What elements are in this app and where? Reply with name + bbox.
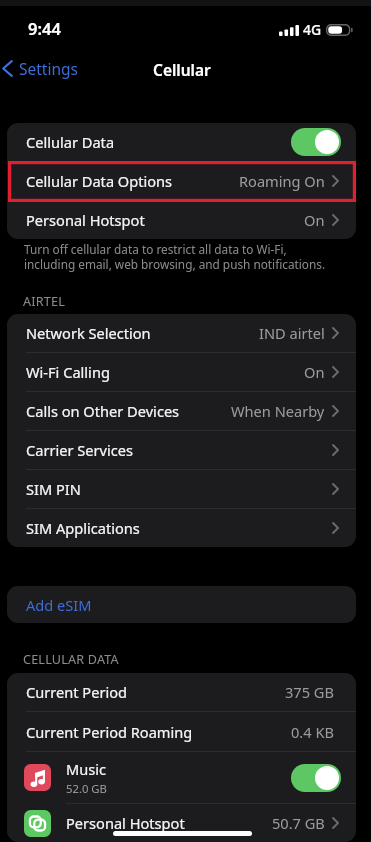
staticText: Personal Hotspot bbox=[26, 210, 145, 230]
button[interactable]: Current Period bbox=[7, 673, 356, 711]
button[interactable]: Add eSIM bbox=[7, 586, 356, 623]
staticText: 4G bbox=[303, 20, 322, 39]
button[interactable]: Cellular Data Options bbox=[7, 162, 356, 200]
staticText: When Nearby bbox=[231, 401, 325, 421]
staticText: Settings bbox=[19, 58, 78, 79]
staticText: Wi-Fi Calling bbox=[26, 362, 110, 382]
staticText: 50.7 GB bbox=[272, 813, 325, 833]
staticText: Roaming On bbox=[239, 171, 325, 191]
staticText: On bbox=[304, 210, 325, 230]
staticText: SIM Applications bbox=[26, 518, 140, 538]
button[interactable]: SIM PIN bbox=[7, 470, 356, 508]
staticText: 0.4 KB bbox=[291, 722, 334, 742]
staticText: 375 GB bbox=[285, 682, 334, 702]
staticText: Personal Hotspot bbox=[66, 813, 185, 833]
button[interactable]: Carrier Services bbox=[7, 431, 356, 469]
staticText: 9:44 bbox=[28, 17, 61, 39]
staticText: Network Selection bbox=[26, 323, 151, 343]
staticText: Cellular bbox=[153, 59, 211, 80]
staticText: Current Period bbox=[26, 682, 127, 702]
staticText: Carrier Services bbox=[26, 440, 133, 460]
button[interactable]: SIM Applications bbox=[7, 509, 356, 547]
staticText: CELLULAR DATA bbox=[23, 651, 119, 668]
button[interactable]: Calls on Other Devices bbox=[7, 392, 356, 430]
staticText: Current Period Roaming bbox=[26, 722, 193, 742]
staticText: Add eSIM bbox=[26, 595, 92, 615]
button[interactable]: Network Selection bbox=[7, 314, 356, 352]
button[interactable]: Settings bbox=[0, 55, 86, 82]
button[interactable]: Current Period Roaming bbox=[7, 712, 356, 751]
staticText: Music bbox=[66, 759, 107, 779]
staticText: Calls on Other Devices bbox=[26, 401, 180, 421]
staticText: 52.0 GB bbox=[66, 781, 107, 796]
staticText: Turn off cellular data to restrict all d… bbox=[24, 241, 326, 273]
button[interactable]: Toggle bbox=[291, 128, 341, 156]
button[interactable]: Music bbox=[7, 752, 356, 803]
button[interactable]: Wi-Fi Calling bbox=[7, 353, 356, 391]
staticText: Cellular Data Options bbox=[26, 171, 173, 191]
staticText: SIM PIN bbox=[26, 479, 81, 499]
staticText: On bbox=[304, 362, 325, 382]
button[interactable]: Toggle bbox=[291, 764, 341, 792]
staticText: AIRTEL bbox=[23, 293, 65, 310]
button[interactable]: Personal Hotspot bbox=[7, 804, 356, 842]
button[interactable]: Cellular Data bbox=[7, 123, 356, 161]
staticText: IND airtel bbox=[259, 323, 325, 343]
button[interactable]: Personal Hotspot bbox=[7, 201, 356, 239]
staticText: Cellular Data bbox=[26, 132, 115, 152]
